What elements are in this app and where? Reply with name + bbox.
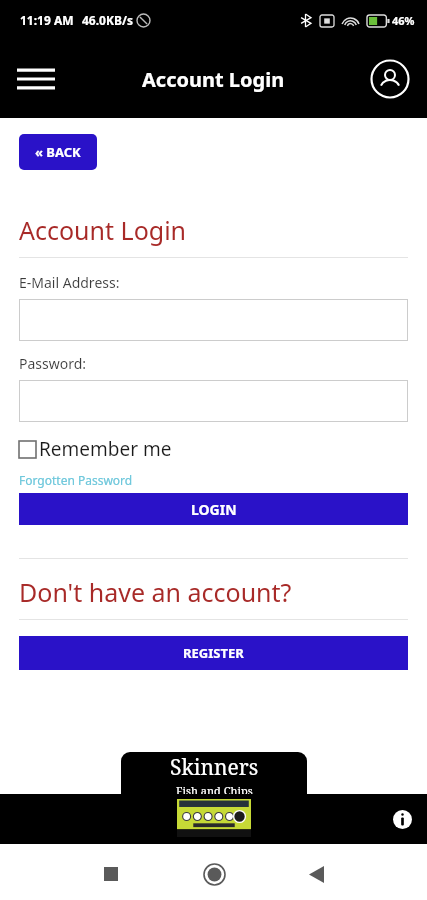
staticText: 46.0KB/s [82, 12, 133, 28]
staticText: Password: [19, 354, 87, 373]
staticText: 11:19 AM [20, 12, 74, 28]
button[interactable]: Recent apps [90, 853, 132, 895]
staticText: Fish and Chips [176, 783, 253, 798]
staticText: Account Login [19, 213, 187, 247]
staticText: 46% [392, 13, 415, 28]
button[interactable]: Account [363, 52, 417, 106]
button[interactable]: Remember me [19, 436, 172, 462]
button[interactable]: « BACK [19, 134, 97, 170]
staticText: LOGIN [191, 500, 237, 519]
staticText: Account Login [142, 66, 285, 93]
button[interactable]: Ad information [391, 808, 413, 830]
button[interactable] [19, 299, 408, 341]
button[interactable]: Forgotten Password [19, 472, 133, 488]
button[interactable]: Skinners [121, 752, 307, 798]
button[interactable]: Home [193, 853, 235, 895]
staticText: Skinners [170, 753, 259, 782]
staticText: Forgotten Password [19, 472, 133, 488]
button[interactable]: LOGIN [19, 493, 408, 525]
button[interactable]: Back [295, 853, 337, 895]
staticText: Don't have an account? [19, 575, 292, 609]
button[interactable] [19, 380, 408, 422]
button[interactable]: Ad information [0, 794, 427, 844]
button[interactable]: REGISTER [19, 636, 408, 670]
button[interactable]: Menu [8, 51, 64, 107]
staticText: « BACK [35, 143, 81, 161]
staticText: REGISTER [183, 644, 244, 662]
staticText: E-Mail Address: [19, 273, 120, 292]
staticText: Remember me [39, 436, 172, 462]
